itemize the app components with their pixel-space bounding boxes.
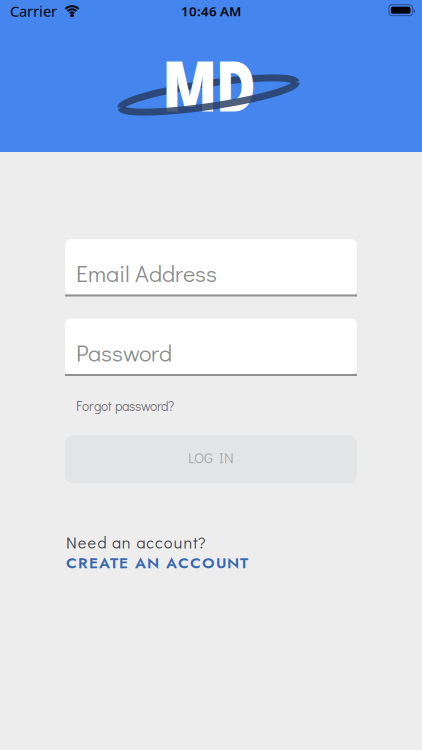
- staticText: Email Address: [76, 257, 217, 288]
- button[interactable]: LOG IN: [65, 435, 357, 483]
- staticText: Carrier: [10, 1, 57, 21]
- button[interactable]: Password: [65, 318, 357, 376]
- staticText: Password: [76, 337, 172, 368]
- staticText: MD: [155, 59, 265, 128]
- staticText: LOG IN: [188, 448, 234, 467]
- staticText: 10:46 AM: [181, 2, 241, 20]
- staticText: Need an account?: [66, 531, 205, 553]
- staticText: CREATE AN ACCOUNT: [66, 552, 248, 574]
- button[interactable]: Forgot password?: [76, 397, 174, 414]
- button[interactable]: CREATE AN ACCOUNT: [66, 552, 248, 574]
- staticText: Forgot password?: [76, 397, 174, 414]
- button[interactable]: Email Address: [65, 239, 357, 296]
